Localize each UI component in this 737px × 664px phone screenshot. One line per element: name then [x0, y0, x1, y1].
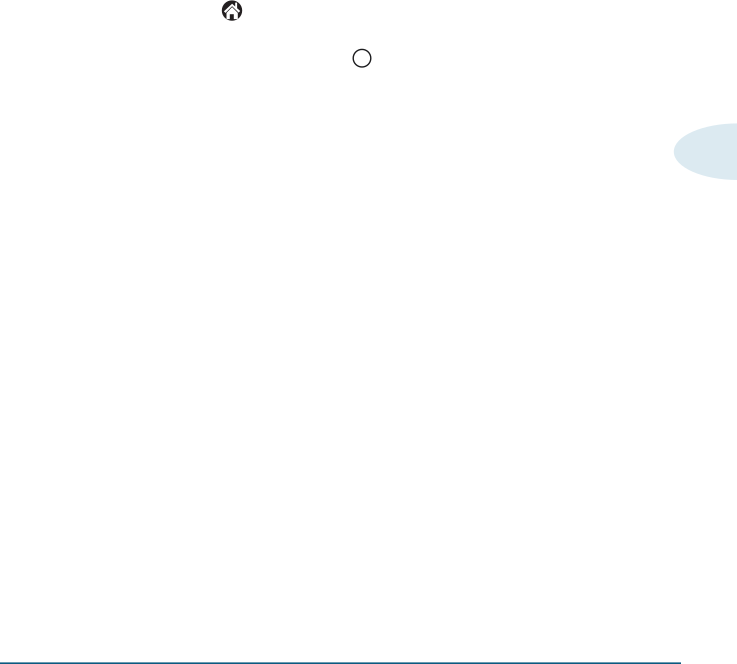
button[interactable]: Select: [353, 49, 371, 67]
button[interactable]: Home: [222, 0, 242, 21]
